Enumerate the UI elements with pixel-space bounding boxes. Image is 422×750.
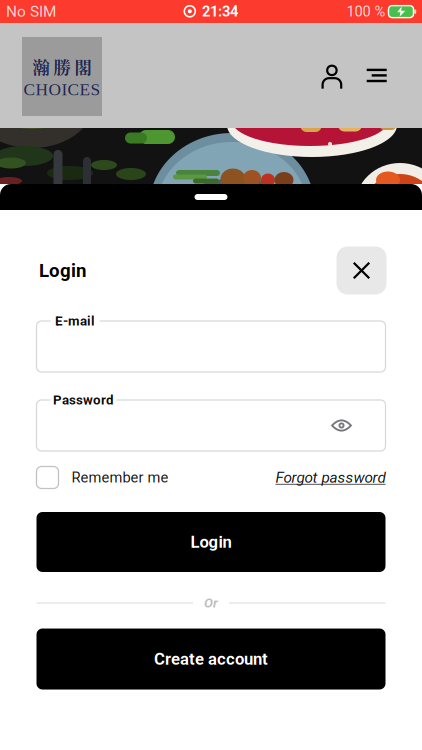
staticText: No SIM xyxy=(6,2,56,20)
button[interactable]: Account xyxy=(310,44,354,94)
staticText: Password xyxy=(53,392,114,408)
button[interactable]: Login xyxy=(36,512,385,572)
staticText: 100 % xyxy=(346,3,385,20)
staticText: Or xyxy=(204,595,218,611)
staticText: Forgot password xyxy=(275,468,385,486)
staticText: 瀚 勝 閣 xyxy=(32,54,91,79)
button[interactable]: Remember me xyxy=(36,466,168,488)
button[interactable]: Close xyxy=(336,246,386,294)
staticText: CHOICES xyxy=(23,80,100,99)
button[interactable]: Create account xyxy=(36,628,385,689)
button[interactable]: Menu xyxy=(355,44,399,94)
staticText: E-mail xyxy=(55,313,95,329)
staticText: Create account xyxy=(154,649,268,669)
button[interactable]: Forgot password xyxy=(275,468,385,486)
staticText: Remember me xyxy=(71,469,168,486)
staticText: Login xyxy=(39,260,86,281)
staticText: Login xyxy=(190,532,231,552)
button[interactable]: Show password xyxy=(324,408,358,442)
staticText: 21:34 xyxy=(202,3,238,20)
